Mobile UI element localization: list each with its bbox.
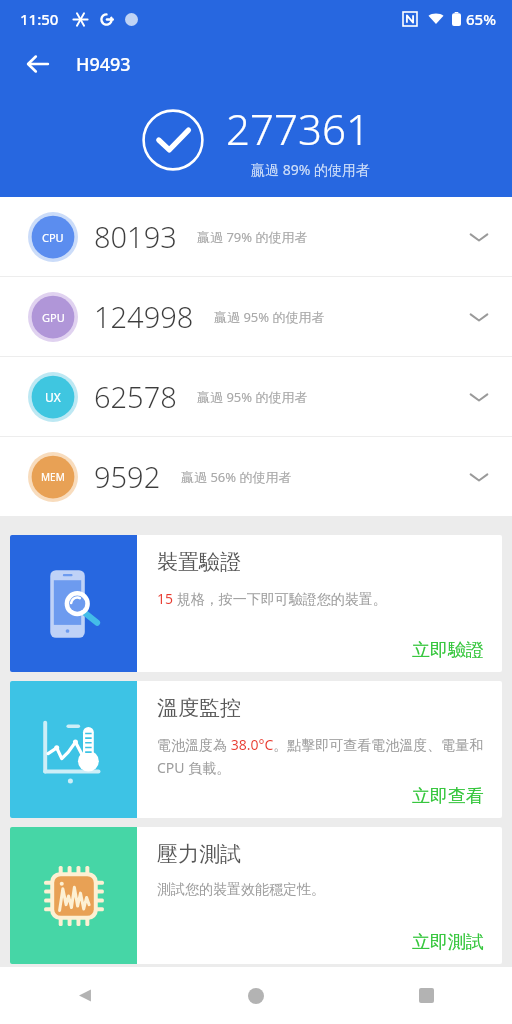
button[interactable]: Home: [170, 967, 341, 1024]
button[interactable]: Back: [18, 44, 58, 84]
button[interactable]: MEM: [0, 437, 512, 516]
button[interactable]: 裝置驗證: [10, 535, 502, 672]
staticText: 277361: [226, 100, 370, 157]
button[interactable]: 立即測試: [410, 929, 486, 956]
staticText: 80193: [94, 217, 177, 256]
staticText: 測試您的裝置效能穩定性。: [157, 881, 325, 899]
button[interactable]: 壓力測試: [10, 827, 502, 964]
staticText: 立即查看: [412, 785, 484, 808]
staticText: 贏過 95% 的使用者: [214, 308, 325, 326]
staticText: 贏過 89% 的使用者: [251, 160, 370, 179]
staticText: H9493: [76, 52, 131, 77]
button[interactable]: 溫度監控: [10, 681, 502, 818]
button[interactable]: GPU: [0, 277, 512, 356]
staticText: CPU: [42, 230, 64, 245]
staticText: 贏過 56% 的使用者: [181, 468, 292, 486]
staticText: 立即測試: [412, 931, 484, 954]
staticText: 贏過 95% 的使用者: [197, 388, 308, 406]
staticText: 9592: [94, 457, 161, 496]
button[interactable]: 立即查看: [410, 783, 486, 810]
staticText: 124998: [94, 297, 194, 336]
staticText: 溫度監控: [157, 695, 241, 721]
button[interactable]: Back: [0, 967, 170, 1024]
staticText: MEM: [41, 470, 65, 484]
staticText: 壓力測試: [157, 841, 241, 867]
staticText: 立即驗證: [412, 639, 484, 662]
staticText: UX: [45, 389, 61, 405]
staticText: 62578: [94, 377, 177, 416]
staticText: 15 規格，按一下即可驗證您的裝置。: [157, 589, 387, 608]
staticText: 11:50: [20, 9, 59, 29]
staticText: 裝置驗證: [157, 549, 241, 575]
staticText: 贏過 79% 的使用者: [197, 228, 308, 246]
button[interactable]: Recents: [341, 967, 512, 1024]
staticText: 65%: [466, 9, 496, 29]
staticText: GPU: [42, 310, 65, 325]
staticText: 電池溫度為 38.0°C。點擊即可查看電池溫度、電量和 CPU 負載。: [157, 735, 486, 777]
button[interactable]: 立即驗證: [410, 637, 486, 664]
button[interactable]: CPU: [0, 197, 512, 276]
button[interactable]: UX: [0, 357, 512, 436]
